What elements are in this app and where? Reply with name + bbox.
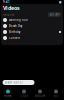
button[interactable]: Concert: [1, 35, 63, 41]
button[interactable]: Morning Run: [1, 17, 63, 23]
staticText: Albums: [35, 94, 45, 97]
button[interactable]: Birthday: [1, 29, 63, 35]
button[interactable]: Albums: [32, 89, 48, 97]
button[interactable]: Clips: [16, 89, 32, 97]
staticText: Birthday: [9, 30, 20, 34]
staticText: Concert: [9, 36, 20, 40]
staticText: Morning Run: [9, 18, 28, 22]
staticText: You: [53, 94, 58, 97]
staticText: Videos: [3, 4, 20, 12]
staticText: See All: [49, 13, 59, 16]
staticText: 9:41: [3, 0, 10, 4]
staticText: Clips: [20, 94, 27, 97]
button[interactable]: See All: [48, 12, 61, 17]
staticText: Beach Day: [9, 24, 22, 28]
button[interactable]: You: [48, 89, 64, 97]
staticText: ▮▮: [59, 0, 61, 3]
staticText: Recents: [3, 13, 14, 16]
staticText: Home: [4, 94, 12, 97]
button[interactable]: Beach Day: [1, 23, 63, 29]
button[interactable]: Search videos: [2, 80, 34, 85]
button[interactable]: Home: [0, 89, 16, 97]
staticText: Search videos: [4, 81, 22, 84]
